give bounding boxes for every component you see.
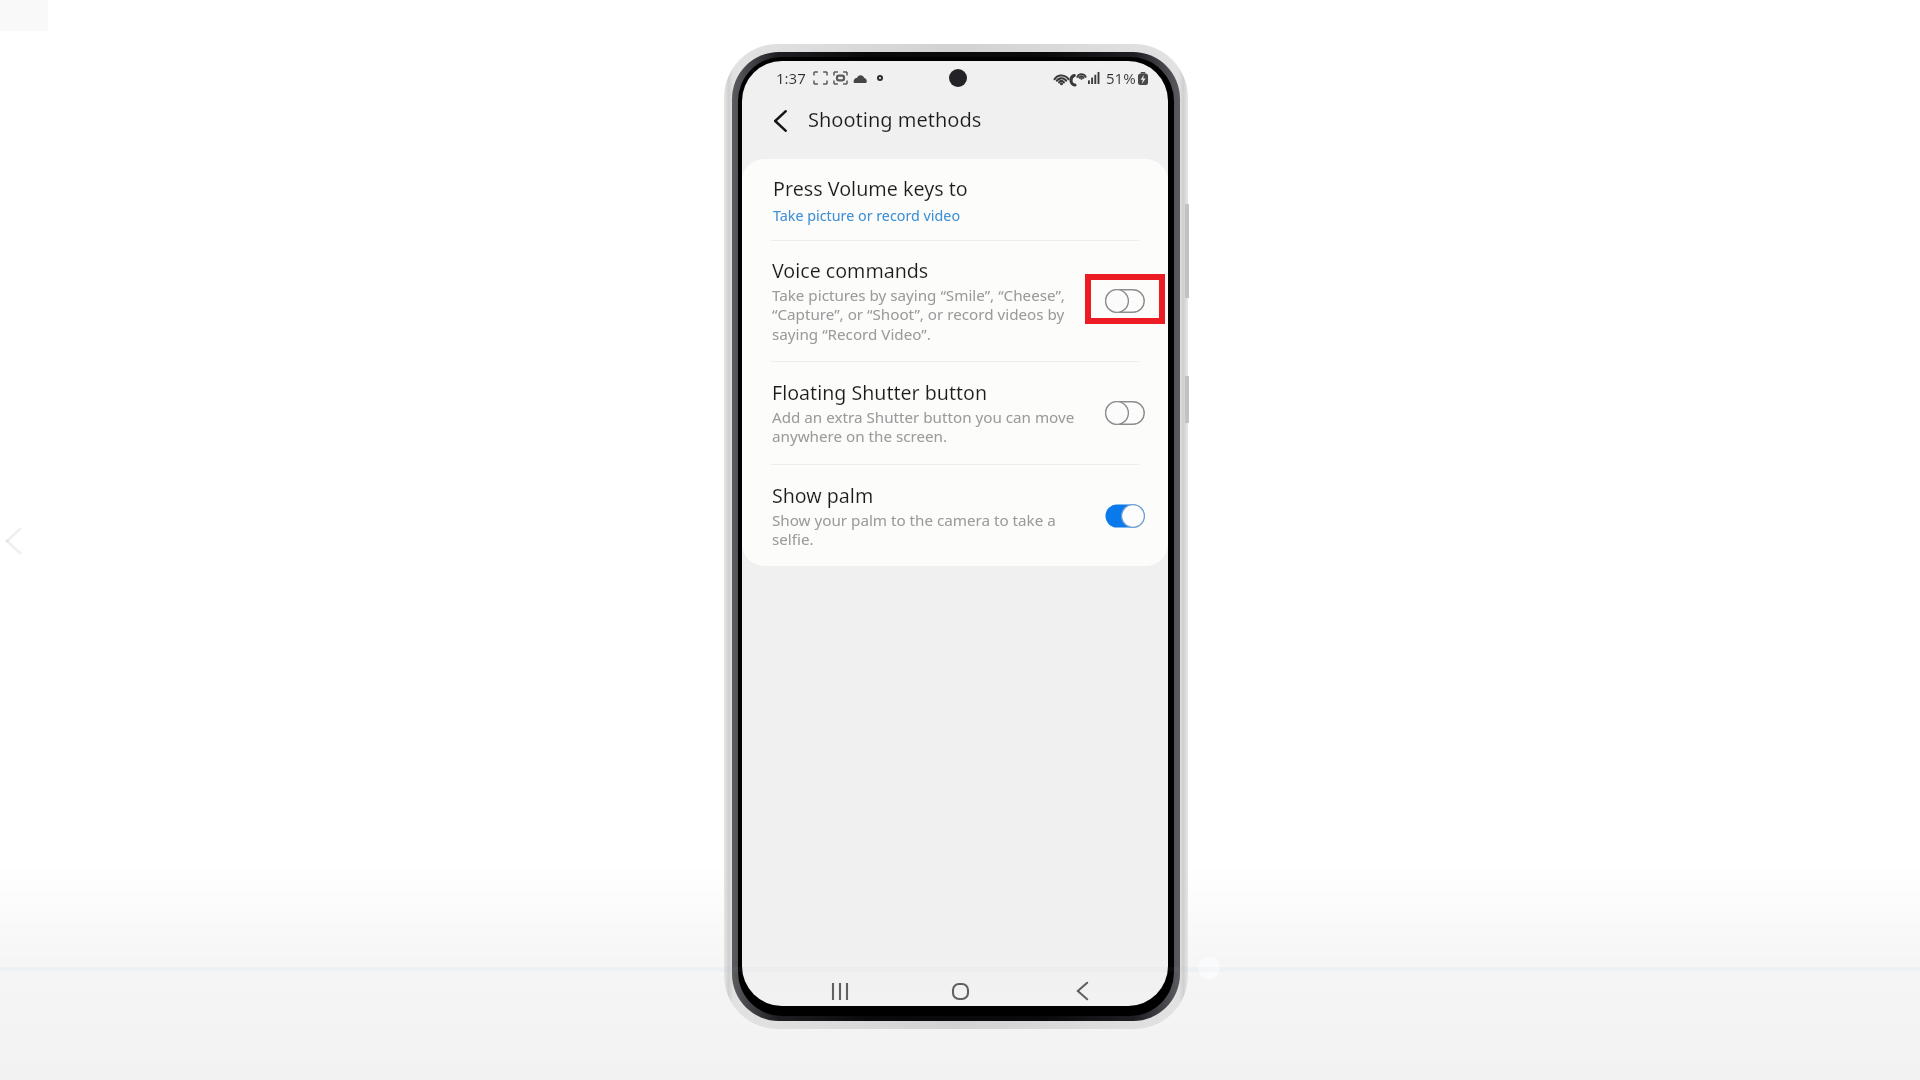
button[interactable]: Recent apps [811, 963, 868, 1006]
staticText: Show your palm to the camera to take a s… [772, 510, 1084, 550]
staticText: Shooting methods [808, 106, 982, 133]
button[interactable]: Press Volume keys to [742, 159, 1168, 240]
button[interactable]: Floating Shutter button [742, 362, 1168, 464]
staticText: Show palm [772, 482, 874, 509]
staticText: Floating Shutter button [772, 379, 988, 406]
button[interactable]: Back [1054, 963, 1111, 1006]
button[interactable]: Turn on [1105, 289, 1145, 313]
staticText: Voice commands [772, 257, 929, 284]
button[interactable]: Show palm [742, 465, 1168, 566]
staticText: Press Volume keys to [773, 175, 968, 202]
button[interactable]: Home [932, 963, 989, 1006]
staticText: 1:37 [776, 68, 806, 88]
staticText: Add an extra Shutter button you can move… [772, 407, 1084, 447]
staticText: Take pictures by saying “Smile”, “Cheese… [772, 285, 1084, 345]
button[interactable]: Back [760, 101, 800, 141]
button[interactable]: Turn on [1105, 401, 1145, 425]
button[interactable]: Voice commands [742, 241, 1168, 361]
staticText: 51% [1106, 68, 1136, 88]
staticText: Take picture or record video [773, 206, 961, 225]
button[interactable]: Turn off [1105, 504, 1145, 528]
